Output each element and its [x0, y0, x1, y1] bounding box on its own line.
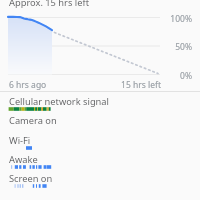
- staticText: Cellular network signal: [9, 95, 109, 108]
- staticText: 100%: [0, 13, 192, 25]
- button[interactable]: Awake: [0, 152, 200, 171]
- staticText: Screen on: [9, 172, 53, 185]
- staticText: 0%: [0, 70, 192, 82]
- staticText: 6 hrs ago: [9, 79, 47, 91]
- button[interactable]: Cellular network signal: [0, 94, 200, 113]
- staticText: 15 hrs left: [0, 79, 161, 91]
- staticText: Approx. 15 hrs left: [9, 0, 89, 9]
- button[interactable]: Screen on: [0, 171, 200, 190]
- staticText: 50%: [0, 41, 192, 53]
- staticText: Camera on: [9, 114, 57, 127]
- button[interactable]: Wi-Fi: [0, 133, 200, 152]
- button[interactable]: Camera on: [0, 113, 200, 132]
- staticText: Awake: [9, 153, 38, 166]
- staticText: Wi-Fi: [9, 134, 31, 147]
